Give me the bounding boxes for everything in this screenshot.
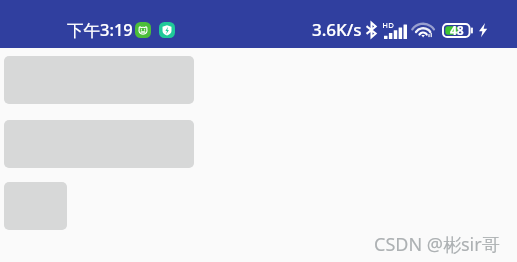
staticText: 下午3:19 (67, 18, 133, 41)
staticText: 3.6K/s (312, 18, 362, 41)
staticText: 48 (450, 22, 464, 37)
staticText: CSDN @彬sir哥 (374, 232, 500, 257)
